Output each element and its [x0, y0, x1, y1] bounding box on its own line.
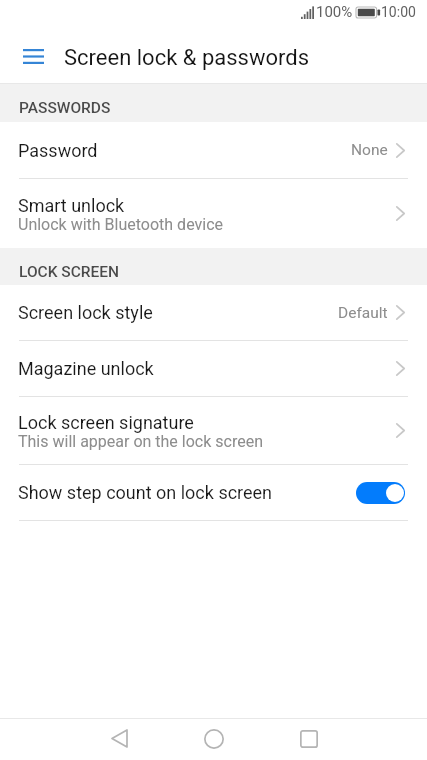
- button[interactable]: Open navigation menu: [11, 24, 55, 84]
- staticText: 100%: [316, 3, 353, 21]
- staticText: Lock screen signature: [18, 412, 194, 433]
- button[interactable]: Lock screen signature: [0, 397, 427, 464]
- button[interactable]: Recent apps: [285, 719, 333, 758]
- staticText: Default: [338, 304, 388, 322]
- staticText: Password: [18, 140, 98, 161]
- staticText: Magazine unlock: [18, 358, 154, 379]
- staticText: Unlock with Bluetooth device: [18, 215, 224, 234]
- staticText: PASSWORDS: [19, 99, 111, 117]
- button[interactable]: Smart unlock: [0, 179, 427, 248]
- button[interactable]: Back: [95, 719, 143, 758]
- staticText: Screen lock & passwords: [64, 45, 310, 71]
- button[interactable]: Show step count on lock screen toggle: [356, 482, 405, 504]
- button[interactable]: Home: [190, 719, 238, 758]
- button[interactable]: Password: [0, 122, 427, 178]
- button[interactable]: Screen lock style: [0, 285, 427, 340]
- staticText: Smart unlock: [18, 195, 125, 216]
- button[interactable]: Show step count on lock screen: [0, 465, 427, 520]
- staticText: Show step count on lock screen: [18, 482, 273, 503]
- button[interactable]: Magazine unlock: [0, 341, 427, 396]
- staticText: LOCK SCREEN: [19, 263, 120, 281]
- staticText: 10:00: [381, 4, 416, 20]
- staticText: Screen lock style: [18, 302, 153, 323]
- staticText: None: [351, 141, 388, 159]
- staticText: This will appear on the lock screen: [18, 432, 263, 451]
